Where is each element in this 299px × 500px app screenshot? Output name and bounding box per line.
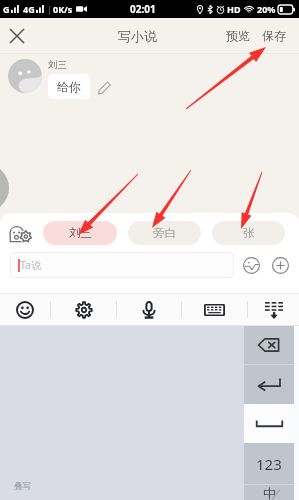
staticText: 4G (23, 3, 35, 15)
button[interactable]: Hide keyboard (248, 294, 299, 325)
staticText: 保存 (262, 28, 286, 43)
staticText: 刘三 (48, 59, 67, 71)
staticText: 张 (243, 226, 255, 240)
button[interactable]: 旁白 (128, 221, 201, 245)
button[interactable]: Settings (51, 294, 116, 325)
button[interactable]: 预览 (219, 19, 257, 52)
button[interactable]: Edit (95, 78, 113, 96)
staticText: 写小说 (118, 28, 157, 44)
button[interactable]: Enter (244, 365, 294, 404)
staticText: 叠写 (14, 481, 31, 492)
button[interactable]: 保存 (257, 19, 299, 52)
button[interactable]: Emoji (0, 294, 50, 325)
button[interactable]: Keyboard (182, 294, 247, 325)
staticText: HD (227, 3, 241, 15)
button[interactable]: Ta说 (10, 252, 234, 278)
staticText: 预览 (226, 28, 250, 43)
staticText: 0K/s (53, 3, 73, 15)
button[interactable]: Numbers (244, 443, 294, 484)
button[interactable]: 张 (212, 221, 285, 245)
button[interactable]: Space (244, 404, 294, 443)
staticText: 刘三 (69, 226, 92, 240)
staticText: G (3, 3, 10, 15)
staticText: | (47, 3, 52, 15)
staticText: 20% (257, 3, 276, 15)
staticText: 给你 (57, 79, 81, 94)
button[interactable]: Close (0, 19, 34, 53)
staticText: Ta说 (20, 258, 42, 272)
button[interactable]: Voice input (117, 294, 181, 325)
staticText: 中 (263, 485, 276, 500)
button[interactable]: Backspace (244, 326, 294, 364)
staticText: 123 (256, 454, 282, 474)
button[interactable]: Emoji (240, 254, 262, 276)
staticText: 旁白 (153, 226, 176, 240)
button[interactable]: 刘三 (43, 221, 117, 245)
staticText: 02:01 (130, 2, 156, 16)
button[interactable]: Language (244, 485, 294, 500)
button[interactable]: Role settings (8, 221, 34, 245)
button[interactable]: Add (269, 254, 291, 276)
